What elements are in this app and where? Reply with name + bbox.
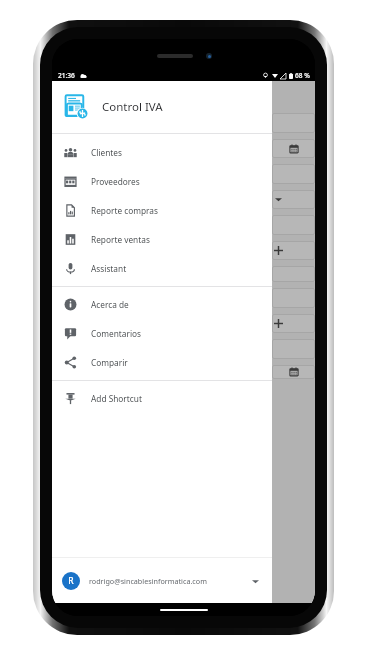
button[interactable]: Reporte compras — [52, 196, 272, 225]
staticText: Reporte compras — [91, 205, 158, 216]
staticText: Add Shortcut — [91, 393, 142, 404]
button[interactable]: Proveedores — [52, 167, 272, 196]
staticText: Comentarios — [91, 328, 142, 339]
button[interactable]: Comentarios — [52, 319, 272, 348]
button[interactable]: Add Shortcut — [52, 384, 272, 413]
staticText: Clientes — [91, 147, 122, 158]
button[interactable]: Assistant — [52, 254, 272, 283]
staticText: Comparir — [91, 357, 128, 368]
button[interactable]: Switch account — [248, 574, 262, 588]
staticText: 21:36 — [58, 71, 75, 80]
button[interactable]: R — [52, 558, 272, 603]
staticText: Assistant — [91, 263, 127, 274]
staticText: rodrigo@sincablesinformatica.com — [89, 576, 207, 586]
staticText: Proveedores — [91, 176, 140, 187]
staticText: Acerca de — [91, 299, 129, 310]
staticText: Reporte ventas — [91, 234, 150, 245]
staticText: 68 % — [295, 71, 310, 80]
button[interactable]: Acerca de — [52, 290, 272, 319]
button[interactable]: Comparir — [52, 348, 272, 377]
staticText: Control IVA — [102, 99, 163, 115]
staticText: R — [68, 575, 74, 587]
button[interactable]: Reporte ventas — [52, 225, 272, 254]
button[interactable]: Control IVA — [52, 81, 272, 133]
button[interactable]: Clientes — [52, 138, 272, 167]
